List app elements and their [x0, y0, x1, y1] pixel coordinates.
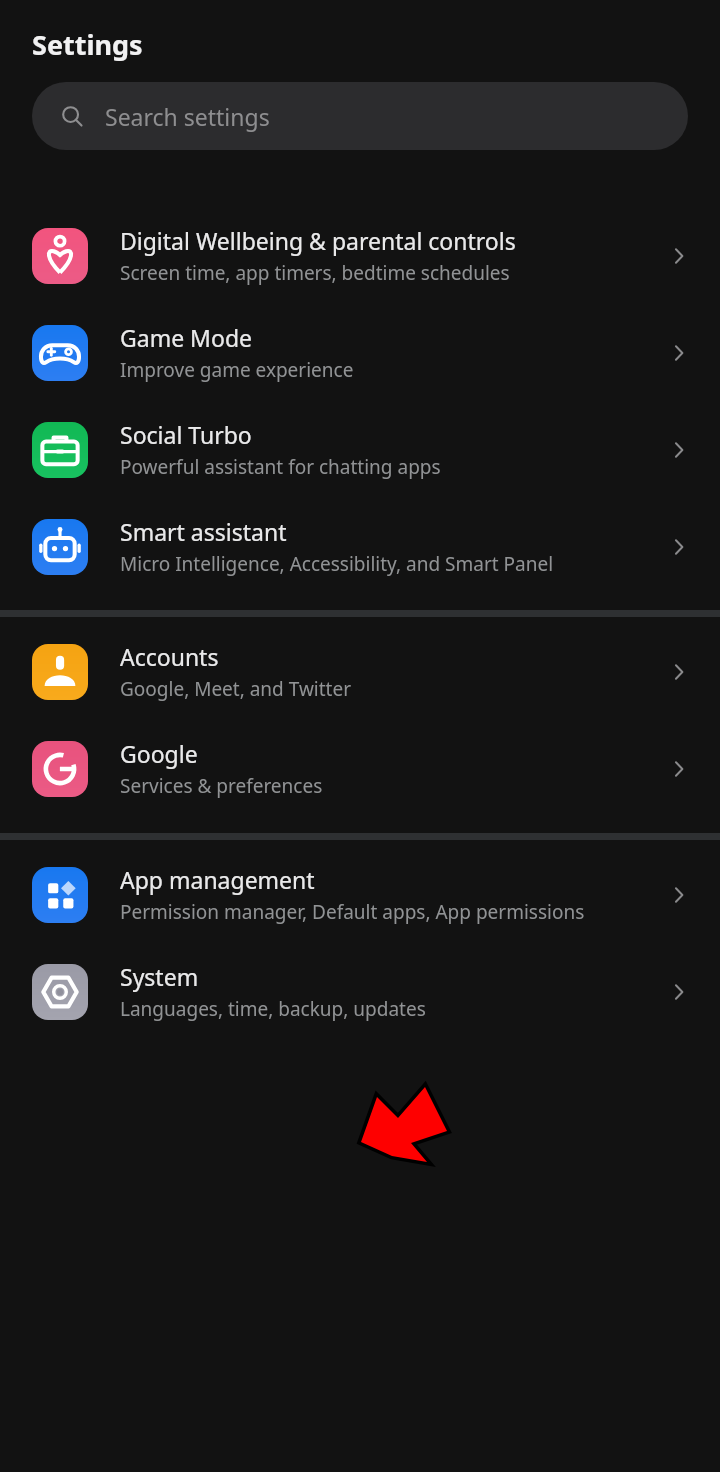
button[interactable]: Search settings [32, 82, 688, 150]
button[interactable]: Smart assistant [0, 498, 720, 595]
staticText: Languages, time, backup, updates [120, 996, 426, 1022]
staticText: Digital Wellbeing & parental controls [120, 225, 516, 256]
staticText: Powerful assistant for chatting apps [120, 454, 441, 480]
staticText: App management [120, 864, 315, 895]
button[interactable]: Game Mode [0, 304, 720, 401]
staticText: Google [120, 738, 198, 769]
staticText: Improve game experience [120, 357, 354, 383]
staticText: Screen time, app timers, bedtime schedul… [120, 260, 510, 286]
button[interactable]: Digital Wellbeing & parental controls [0, 207, 720, 304]
staticText: Google, Meet, and Twitter [120, 676, 352, 702]
button[interactable]: System [0, 943, 720, 1040]
button[interactable]: Accounts [0, 623, 720, 720]
staticText: Smart assistant [120, 516, 287, 547]
staticText: Social Turbo [120, 419, 252, 450]
staticText: Services & preferences [120, 773, 323, 799]
staticText: Game Mode [120, 322, 252, 353]
staticText: Permission manager, Default apps, App pe… [120, 899, 585, 925]
staticText: System [120, 961, 199, 992]
button[interactable]: Google [0, 720, 720, 817]
staticText: Micro Intelligence, Accessibility, and S… [120, 551, 554, 577]
staticText: Settings [32, 26, 143, 63]
button[interactable]: App management [0, 846, 720, 943]
staticText: Search settings [105, 101, 270, 132]
button[interactable]: Social Turbo [0, 401, 720, 498]
staticText: Accounts [120, 641, 219, 672]
